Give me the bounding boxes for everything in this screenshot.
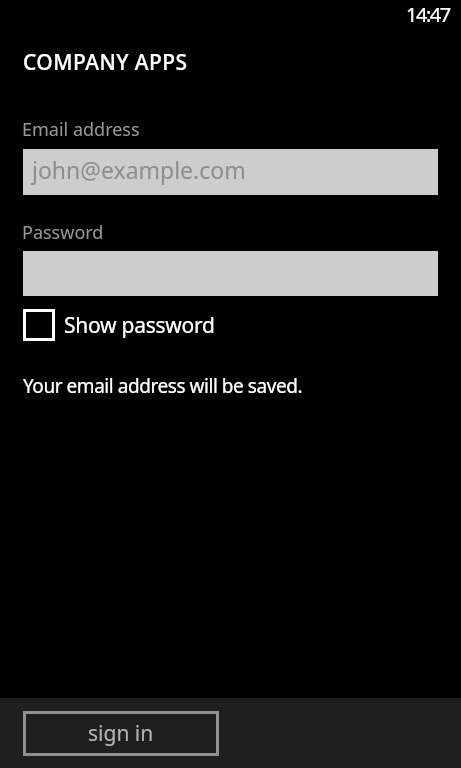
staticText: 14:47 — [406, 1, 450, 28]
staticText: sign in — [88, 719, 154, 748]
staticText: Email address — [22, 117, 140, 142]
button[interactable]: Show password — [23, 309, 206, 341]
staticText: COMPANY APPS — [23, 48, 188, 77]
button[interactable]: sign in — [23, 711, 219, 756]
staticText: Password — [22, 220, 104, 245]
staticText: john@example.com — [32, 154, 246, 185]
button[interactable]: Email address input — [23, 149, 438, 195]
staticText: Show password — [64, 311, 215, 340]
staticText: Your email address will be saved. — [23, 373, 303, 399]
